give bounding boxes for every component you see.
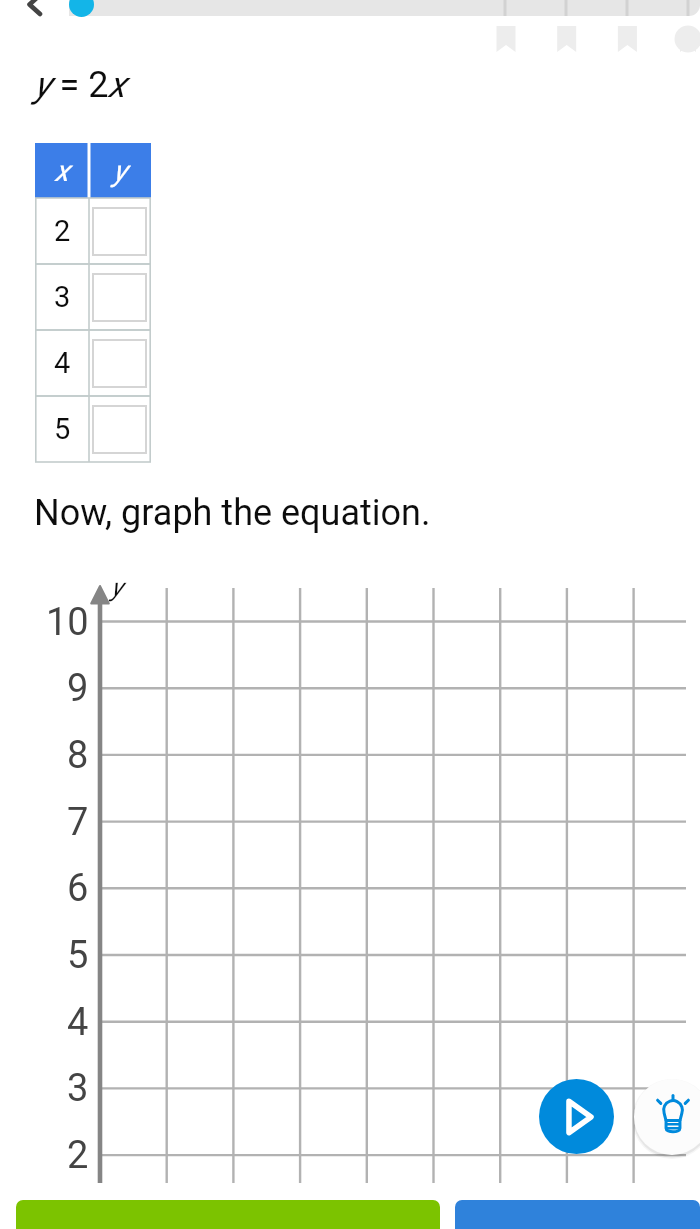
button[interactable]: Hint [634, 1079, 700, 1155]
button[interactable]: Play [539, 1079, 614, 1154]
staticText: Now, graph the equation. [34, 492, 431, 534]
staticText: 6 [67, 866, 89, 910]
staticText: y = 2x [34, 64, 126, 106]
button[interactable]: Answer for 4 [89, 330, 151, 396]
staticText: 2 [54, 214, 71, 248]
staticText: 7 [67, 800, 89, 844]
button[interactable]: Answer for 3 [89, 264, 151, 330]
staticText: y [113, 154, 127, 188]
staticText: 3 [67, 1066, 89, 1110]
staticText: 4 [54, 346, 71, 380]
button[interactable] [16, 1200, 440, 1229]
button[interactable]: Answer for 2 [89, 198, 151, 264]
button[interactable]: Back [8, 0, 60, 30]
staticText: 5 [67, 933, 89, 977]
staticText: 2 [67, 1133, 89, 1177]
staticText: 3 [54, 280, 71, 314]
staticText: 8 [67, 733, 89, 777]
button[interactable]: Answer for 5 [89, 396, 151, 462]
staticText: y [111, 573, 123, 602]
staticText: 5 [54, 412, 71, 446]
staticText: x [55, 154, 69, 188]
staticText: 10 [46, 600, 89, 644]
staticText: 9 [67, 666, 89, 710]
staticText: 4 [67, 1000, 89, 1044]
button[interactable] [455, 1200, 700, 1229]
